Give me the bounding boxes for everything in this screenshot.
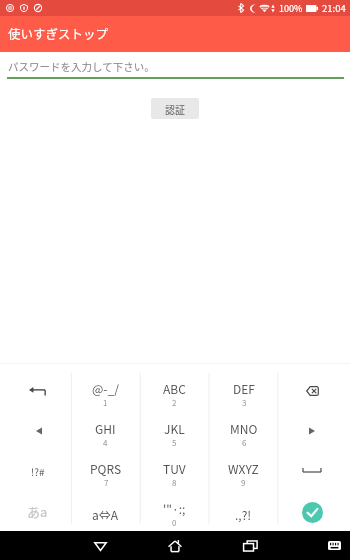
- button[interactable]: あa: [0, 491, 71, 531]
- button[interactable]: 認証: [151, 98, 199, 119]
- staticText: JKL: [164, 420, 185, 437]
- staticText: MNO: [230, 420, 258, 437]
- button[interactable]: @-_/: [71, 371, 140, 411]
- staticText: 1: [103, 397, 108, 409]
- staticText: PQRS: [90, 460, 122, 477]
- staticText: 100%: [279, 2, 303, 15]
- staticText: !?#: [31, 464, 45, 478]
- button[interactable]: Switch keyboard: [317, 531, 350, 560]
- staticText: 7: [104, 477, 109, 489]
- staticText: ABC: [163, 380, 186, 397]
- staticText: DEF: [233, 380, 255, 397]
- staticText: 2: [172, 397, 177, 409]
- staticText: 8: [172, 477, 177, 489]
- button[interactable]: DEF: [209, 371, 278, 411]
- staticText: パスワードを入力して下さい。: [8, 59, 155, 74]
- button[interactable]: MNO: [209, 411, 278, 451]
- staticText: WXYZ: [228, 460, 259, 477]
- staticText: @-_/: [92, 380, 119, 397]
- button[interactable]: Recents: [230, 531, 270, 560]
- staticText: '"·:;: [163, 500, 186, 517]
- staticText: 使いすぎストップ: [8, 24, 109, 42]
- other: Delete: [306, 386, 319, 396]
- button[interactable]: Undo: [0, 371, 71, 411]
- other: Undo: [29, 387, 46, 396]
- button[interactable]: Enter: [278, 491, 350, 531]
- button[interactable]: Move cursor right: [278, 411, 350, 451]
- staticText: 21:04: [322, 1, 346, 15]
- staticText: 0: [172, 517, 177, 529]
- button[interactable]: !?#: [0, 451, 71, 491]
- staticText: 9: [241, 477, 246, 489]
- button[interactable]: Home: [155, 531, 195, 560]
- other: Move cursor left: [36, 427, 42, 435]
- button[interactable]: Space: [278, 451, 350, 491]
- staticText: 4: [103, 437, 108, 449]
- button[interactable]: WXYZ: [209, 451, 278, 491]
- button[interactable]: Back: [80, 531, 120, 560]
- staticText: TUV: [163, 460, 186, 477]
- button[interactable]: GHI: [71, 411, 140, 451]
- button[interactable]: Delete: [278, 371, 350, 411]
- staticText: 3: [242, 397, 247, 409]
- staticText: 6: [242, 437, 247, 449]
- button[interactable]: PQRS: [71, 451, 140, 491]
- button[interactable]: ABC: [140, 371, 209, 411]
- other: Enter: [302, 502, 323, 523]
- staticText: あa: [27, 502, 48, 521]
- staticText: a⇔A: [92, 506, 119, 523]
- other: Space: [302, 465, 322, 473]
- staticText: 認証: [165, 102, 185, 116]
- staticText: 5: [172, 437, 177, 449]
- button[interactable]: Move cursor left: [0, 411, 71, 451]
- other: Move cursor right: [309, 427, 315, 435]
- staticText: .,?!: [235, 506, 252, 523]
- button[interactable]: .,?!: [209, 491, 278, 531]
- staticText: GHI: [95, 420, 116, 437]
- button[interactable]: JKL: [140, 411, 209, 451]
- button[interactable]: TUV: [140, 451, 209, 491]
- button[interactable]: '"·:;: [140, 491, 209, 531]
- button[interactable]: a⇔A: [71, 491, 140, 531]
